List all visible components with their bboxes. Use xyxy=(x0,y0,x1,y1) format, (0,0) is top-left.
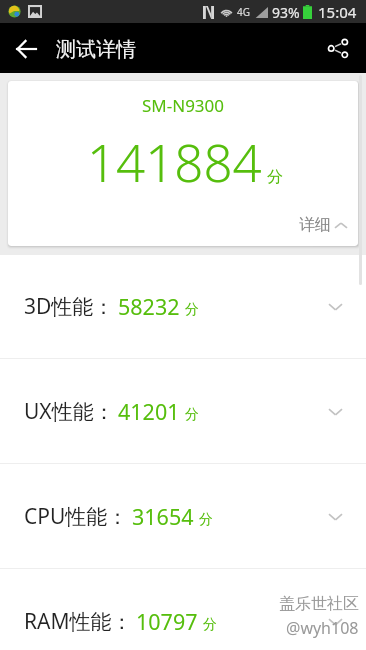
button[interactable]: Back xyxy=(4,26,48,70)
staticText: UX性能： xyxy=(24,397,115,426)
staticText: 详细 xyxy=(299,215,331,235)
staticText: CPU性能： xyxy=(24,502,129,531)
staticText: 3D性能： xyxy=(24,292,115,321)
button[interactable]: RAM性能： xyxy=(0,569,366,650)
staticText: 分 xyxy=(267,167,283,187)
staticText: 141884 xyxy=(87,127,262,196)
staticText: 10797 xyxy=(136,607,198,636)
staticText: 58232 xyxy=(118,292,180,321)
button[interactable]: 3D性能： xyxy=(0,255,366,358)
button[interactable]: UX性能： xyxy=(0,359,366,464)
staticText: 41201 xyxy=(118,397,180,426)
staticText: RAM性能： xyxy=(24,607,133,636)
staticText: 分 xyxy=(203,616,217,634)
staticText: 测试详情 xyxy=(56,37,136,62)
staticText: 分 xyxy=(199,511,213,529)
button[interactable]: Share xyxy=(316,26,360,70)
staticText: 分 xyxy=(185,406,199,424)
staticText: @wyh108 xyxy=(286,617,359,639)
staticText: 31654 xyxy=(132,502,194,531)
staticText: 4G xyxy=(237,5,250,19)
staticText: 93% xyxy=(272,3,300,22)
button[interactable]: CPU性能： xyxy=(0,464,366,569)
button[interactable]: 详细 xyxy=(299,215,347,235)
button[interactable]: SM-N9300 xyxy=(8,81,358,246)
staticText: 分 xyxy=(185,301,199,319)
staticText: 盖乐世社区 xyxy=(279,594,359,614)
staticText: SM-N9300 xyxy=(142,94,225,117)
staticText: 15:04 xyxy=(318,2,357,22)
